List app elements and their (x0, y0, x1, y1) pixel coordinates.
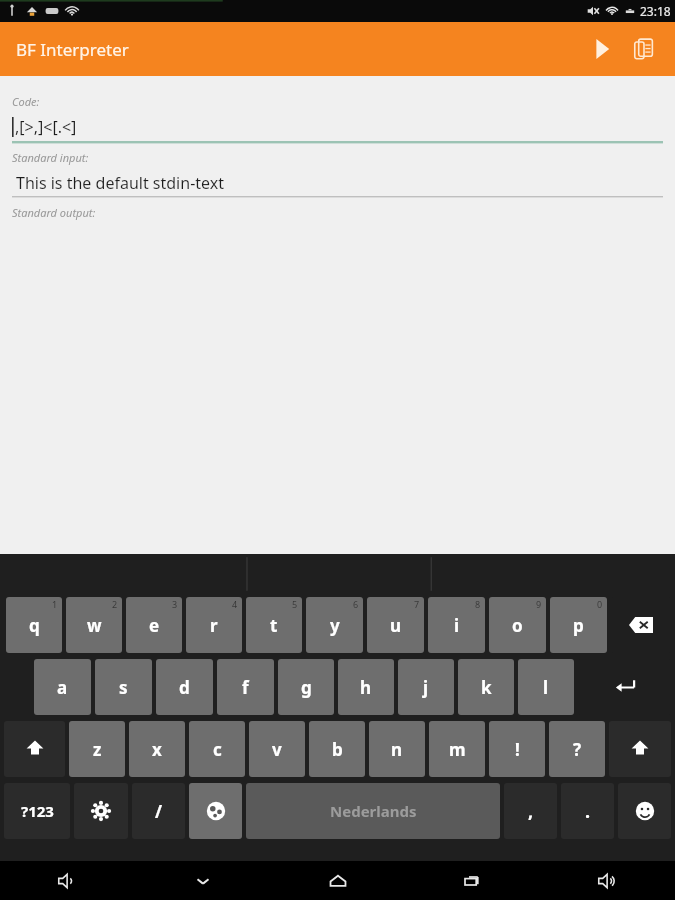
button[interactable]: Volume up (540, 861, 675, 900)
staticText: t (270, 614, 278, 637)
staticText: 0 (597, 598, 603, 610)
button[interactable]: Volume down (0, 861, 135, 900)
staticText: 23:18 (640, 3, 671, 19)
button[interactable]: p (550, 597, 607, 653)
staticText: z (93, 738, 102, 761)
button[interactable]: c (189, 721, 245, 777)
staticText: ? (573, 738, 582, 761)
button[interactable]: This is the default stdin-text (12, 170, 663, 196)
button[interactable]: enter (578, 659, 671, 715)
staticText: w (87, 614, 102, 637)
button[interactable]: a (34, 659, 91, 715)
button[interactable]: period (561, 783, 614, 839)
staticText: e (149, 614, 160, 637)
button[interactable]: h (338, 659, 394, 715)
button[interactable]: j (398, 659, 454, 715)
staticText: v (272, 738, 282, 761)
staticText: 7 (414, 598, 420, 610)
staticText: Code: (12, 94, 40, 109)
staticText: m (449, 738, 466, 761)
staticText: g (301, 676, 312, 699)
staticText: Standard input: (12, 150, 89, 165)
staticText: ! (515, 738, 520, 761)
staticText: q (29, 614, 40, 637)
staticText: f (242, 676, 249, 699)
button[interactable]: k (458, 659, 514, 715)
staticText: BF Interpreter (16, 38, 129, 61)
button[interactable]: r (186, 597, 242, 653)
button[interactable]: ? (549, 721, 605, 777)
staticText: b (332, 738, 343, 761)
button[interactable]: Recents (405, 861, 540, 900)
staticText: a (57, 676, 68, 699)
staticText: r (210, 614, 218, 637)
button[interactable]: w (66, 597, 122, 653)
staticText: j (423, 676, 429, 699)
staticText: 9 (536, 598, 542, 610)
button[interactable]: ! (489, 721, 545, 777)
staticText: ,[>,]<[.<] (15, 116, 77, 138)
button[interactable]: z (69, 721, 125, 777)
staticText: k (481, 676, 492, 699)
button[interactable]: shift (609, 721, 671, 777)
staticText: 5 (292, 598, 298, 610)
button[interactable]: Nederlands (246, 783, 500, 839)
staticText: x (152, 738, 162, 761)
staticText: 2 (112, 598, 118, 610)
button[interactable]: y (306, 597, 363, 653)
staticText: l (543, 676, 549, 699)
staticText: y (330, 614, 340, 637)
button[interactable]: d (156, 659, 213, 715)
staticText: This is the default stdin-text (16, 172, 225, 194)
button[interactable]: gear (74, 783, 128, 839)
staticText: i (454, 614, 460, 637)
staticText: Standard output: (12, 205, 96, 220)
staticText: p (573, 614, 584, 637)
staticText: / (155, 800, 163, 823)
staticText: s (119, 676, 128, 699)
button[interactable]: g (278, 659, 334, 715)
button[interactable]: Run (581, 28, 623, 70)
staticText: n (391, 738, 403, 761)
button[interactable]: i (428, 597, 485, 653)
button[interactable]: u (367, 597, 424, 653)
button[interactable]: / (132, 783, 185, 839)
button[interactable]: b (309, 721, 365, 777)
staticText: Nederlands (330, 801, 417, 821)
staticText: u (390, 614, 402, 637)
button[interactable]: e (126, 597, 182, 653)
staticText: h (360, 676, 372, 699)
staticText: 1 (52, 598, 58, 610)
button[interactable]: x (129, 721, 185, 777)
button[interactable]: BF Interpreter (16, 38, 129, 61)
button[interactable]: Home (270, 861, 405, 900)
staticText: d (179, 676, 190, 699)
staticText: , (528, 799, 534, 824)
button[interactable]: comma (504, 783, 557, 839)
button[interactable]: shift (4, 721, 65, 777)
staticText: 8 (475, 598, 481, 610)
button[interactable]: emoji (618, 783, 671, 839)
staticText: 3 (172, 598, 178, 610)
button[interactable]: v (249, 721, 305, 777)
staticText: . (585, 799, 591, 824)
button[interactable]: globe (189, 783, 242, 839)
button[interactable]: backspace (611, 597, 671, 653)
staticText: ?123 (21, 801, 54, 821)
staticText: 6 (353, 598, 359, 610)
staticText: o (512, 614, 523, 637)
button[interactable]: q (6, 597, 62, 653)
button[interactable]: l (518, 659, 574, 715)
button[interactable]: t (246, 597, 302, 653)
button[interactable]: Copy (623, 28, 665, 70)
button[interactable]: Back (135, 861, 270, 900)
button[interactable]: s (95, 659, 152, 715)
staticText: c (213, 738, 222, 761)
button[interactable]: n (369, 721, 425, 777)
button[interactable]: ?123 (4, 783, 70, 839)
button[interactable]: o (489, 597, 546, 653)
button[interactable]: m (429, 721, 485, 777)
button[interactable]: f (217, 659, 274, 715)
button[interactable]: ,[>,]<[.<] (12, 113, 663, 141)
staticText: 4 (232, 598, 238, 610)
